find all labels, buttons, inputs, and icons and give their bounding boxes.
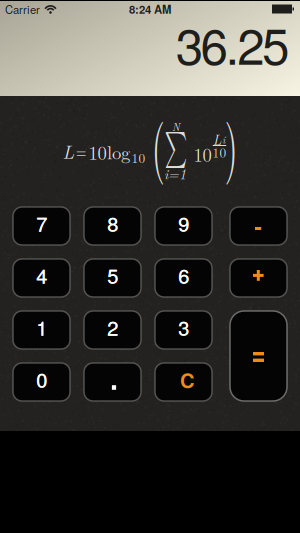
staticText: 7 xyxy=(36,209,47,237)
staticText: 6 xyxy=(178,261,189,289)
button[interactable]: 9 xyxy=(155,207,212,245)
staticText: 5 xyxy=(107,261,118,289)
staticText: ∑ xyxy=(157,130,195,166)
button[interactable]: 2 xyxy=(84,311,141,349)
staticText: 36.25 xyxy=(176,8,289,79)
staticText: 10 xyxy=(212,143,226,161)
button[interactable]: 3 xyxy=(155,311,212,349)
button[interactable]: 5 xyxy=(84,259,141,297)
staticText: 2 xyxy=(107,313,118,341)
staticText: 1 xyxy=(36,313,47,341)
staticText: i=1 xyxy=(164,164,186,183)
staticText: = xyxy=(74,137,89,164)
staticText: L xyxy=(62,138,74,164)
staticText: 1 xyxy=(36,313,47,341)
button[interactable]: 1 xyxy=(13,311,70,349)
button[interactable]: Decimal point xyxy=(84,363,141,401)
staticText: N xyxy=(172,119,180,134)
button[interactable]: 8 xyxy=(84,207,141,245)
staticText: 7 xyxy=(36,209,47,237)
staticText: 5 xyxy=(107,261,118,289)
staticText: 0 xyxy=(36,365,47,393)
staticText: 10 xyxy=(193,141,211,167)
staticText: 6 xyxy=(178,261,189,289)
staticText: log xyxy=(107,138,130,165)
staticText: 8 xyxy=(107,209,118,237)
button[interactable]: 0 xyxy=(13,363,70,401)
button[interactable]: Equals xyxy=(230,311,287,401)
staticText: 8:24 AM xyxy=(129,1,171,17)
staticText: 8 xyxy=(107,209,118,237)
staticText: L xyxy=(213,129,222,149)
button[interactable]: 4 xyxy=(13,259,70,297)
staticText: ) xyxy=(219,98,243,187)
staticText: ( xyxy=(146,98,170,187)
staticText: C xyxy=(180,366,194,394)
button[interactable]: 7 xyxy=(13,207,70,245)
staticText: 9 xyxy=(178,209,189,237)
staticText: 2 xyxy=(107,313,118,341)
staticText: 10 xyxy=(88,139,106,165)
staticText: i xyxy=(222,133,225,147)
staticText: 3 xyxy=(178,313,189,341)
staticText: 10 xyxy=(131,148,145,167)
staticText: 0 xyxy=(36,365,47,393)
staticText: 3 xyxy=(178,313,189,341)
staticText: Carrier xyxy=(5,1,40,17)
staticText: 4 xyxy=(36,261,47,289)
staticText: 9 xyxy=(178,209,189,237)
button[interactable]: Clear xyxy=(155,363,212,401)
button[interactable]: Minus xyxy=(230,207,287,245)
button[interactable]: 6 xyxy=(155,259,212,297)
staticText: 4 xyxy=(36,261,47,289)
button[interactable]: Plus xyxy=(230,259,287,297)
